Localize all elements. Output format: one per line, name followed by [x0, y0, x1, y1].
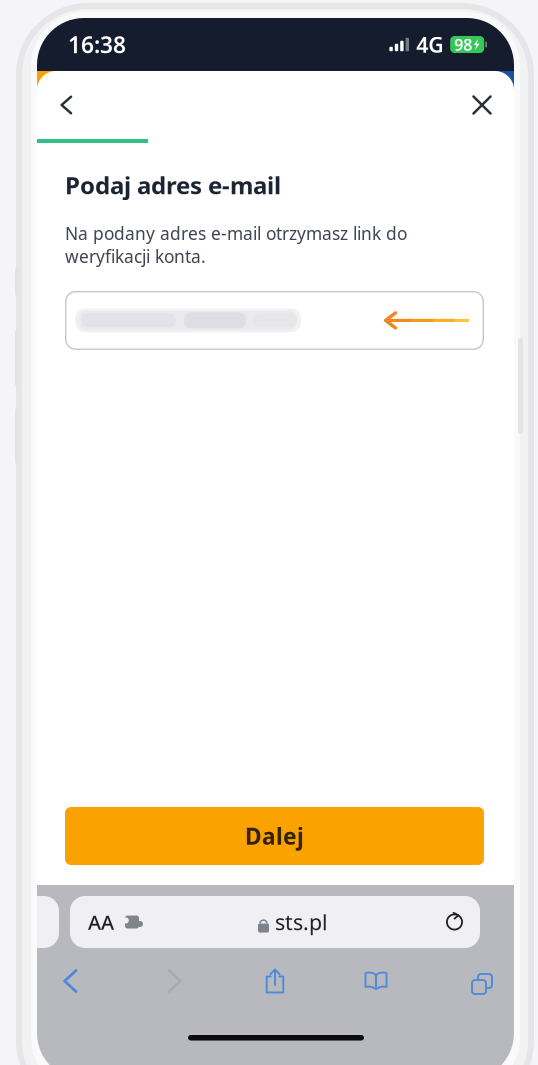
button[interactable]: Dalej	[65, 807, 484, 865]
staticText: sts.pl	[275, 908, 328, 936]
staticText: AA	[88, 909, 114, 935]
button[interactable]: Back	[43, 81, 89, 129]
staticText: 4G	[416, 30, 443, 59]
button[interactable]: Share	[246, 957, 304, 1005]
button[interactable]: Tabs	[450, 957, 508, 1005]
button[interactable]: Bookmarks	[347, 957, 405, 1005]
staticText: Na podany adres e-mail otrzymasz link do…	[65, 222, 407, 268]
staticText: 98	[454, 34, 472, 55]
staticText: 16:38	[68, 29, 126, 59]
staticText: Podaj adres e-mail	[65, 169, 281, 201]
button[interactable]: Close	[459, 81, 505, 129]
button[interactable]: Back	[41, 957, 99, 1005]
button[interactable]: Address	[70, 896, 480, 948]
staticText: Dalej	[245, 821, 304, 851]
